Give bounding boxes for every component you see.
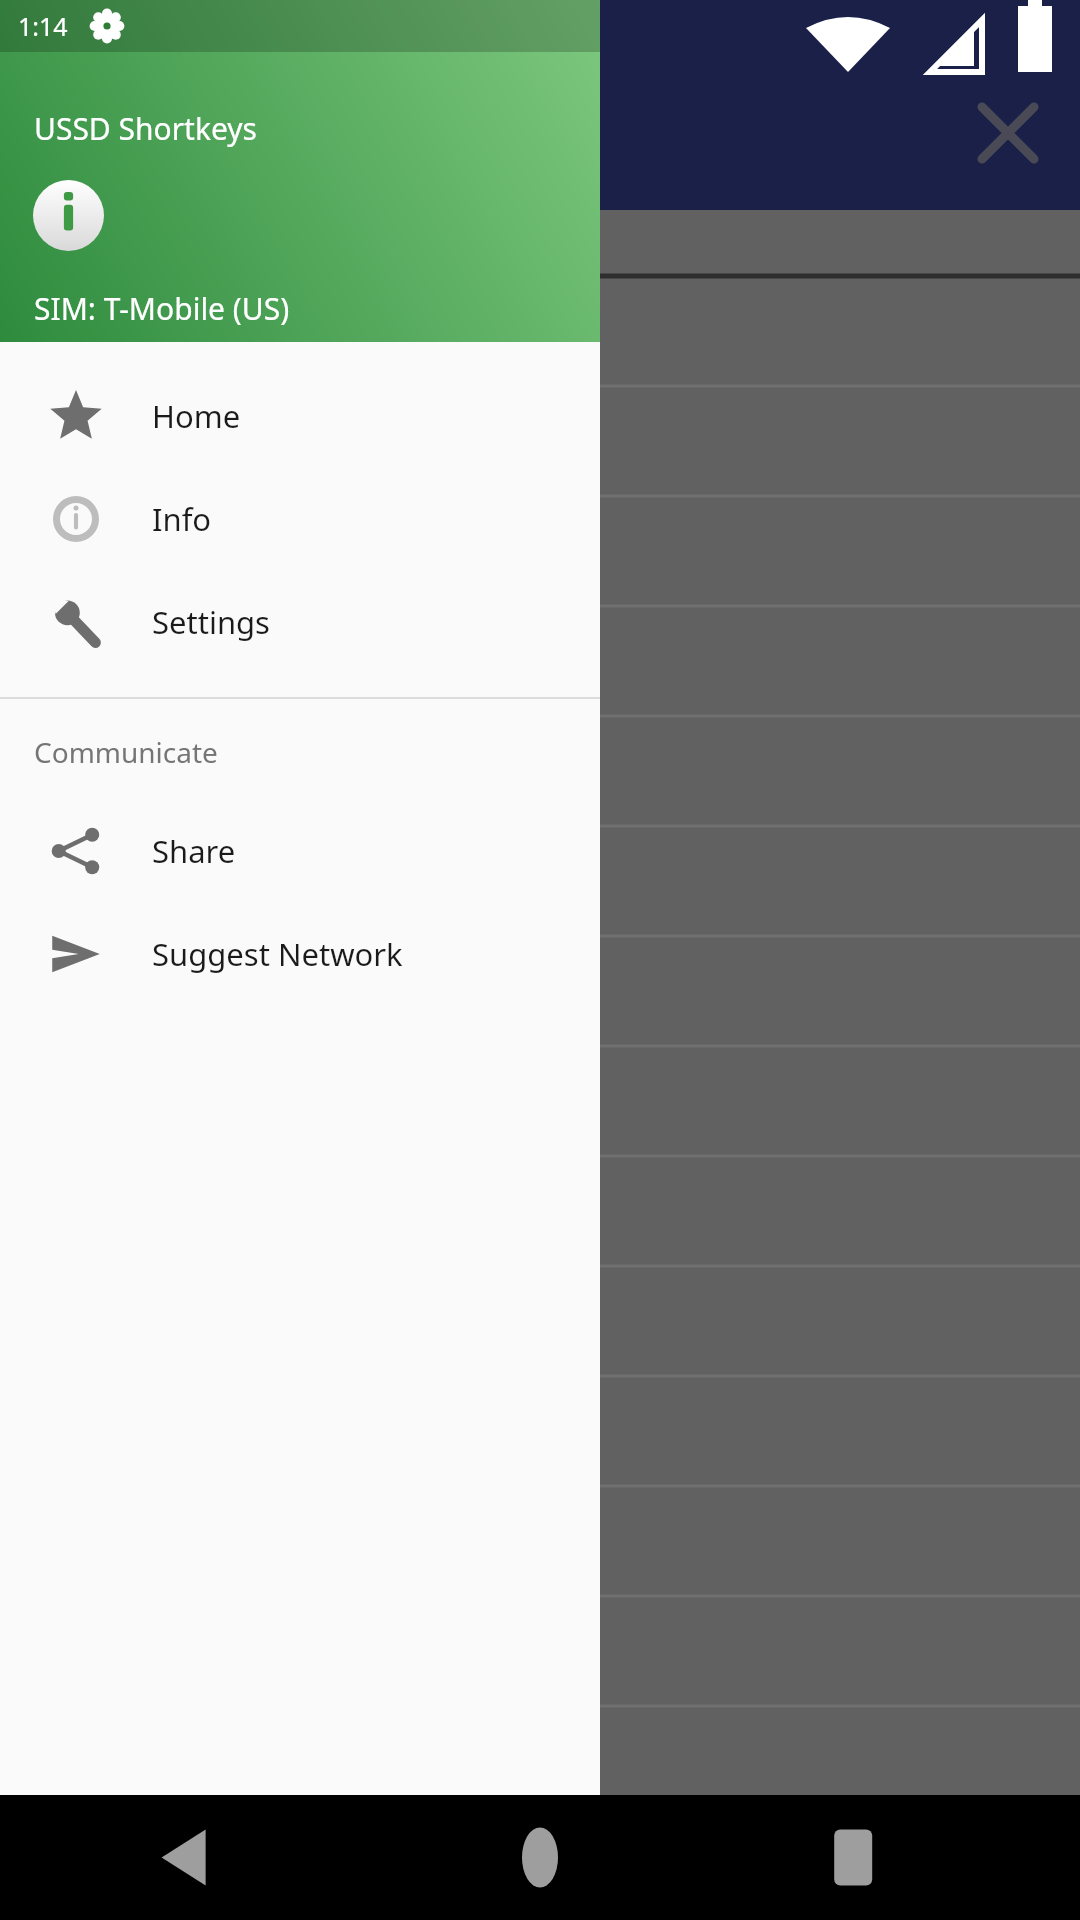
staticText: Suggest Network xyxy=(152,933,403,975)
staticText: USSD Shortkeys xyxy=(34,108,257,149)
staticText: Communicate xyxy=(34,733,218,771)
staticText: Info xyxy=(152,498,212,540)
button[interactable]: Suggest Network xyxy=(0,902,600,1005)
staticText: Settings xyxy=(152,601,270,643)
staticText: Share xyxy=(152,830,236,872)
button[interactable]: Close xyxy=(960,85,1056,181)
button[interactable]: Settings xyxy=(0,570,600,673)
button[interactable]: Share xyxy=(0,799,600,902)
staticText: SIM: T-Mobile (US) xyxy=(34,288,290,329)
staticText: Home xyxy=(152,395,241,437)
button[interactable]: Home xyxy=(0,364,600,467)
button[interactable]: Info xyxy=(0,467,600,570)
staticText: 1:14 xyxy=(18,9,68,43)
